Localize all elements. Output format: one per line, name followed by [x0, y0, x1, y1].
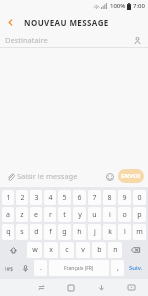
staticText: .	[40, 263, 42, 273]
button[interactable]: Accueil	[56, 279, 86, 296]
button[interactable]: Emoji	[103, 170, 116, 183]
button[interactable]: n	[108, 242, 122, 258]
staticText: o	[122, 210, 127, 220]
button[interactable]: 1	[2, 190, 14, 205]
staticText: 8	[107, 193, 112, 203]
button[interactable]: Applications récentes	[26, 279, 56, 296]
button[interactable]: l	[118, 224, 131, 240]
staticText: j	[94, 227, 96, 237]
button[interactable]: w	[27, 242, 42, 258]
button[interactable]: Majuscule	[2, 242, 25, 258]
button[interactable]: Français (FR)	[49, 260, 109, 276]
staticText: n	[113, 245, 118, 255]
button[interactable]: .	[34, 260, 47, 276]
button[interactable]: 9	[118, 190, 131, 205]
button[interactable]: Retour	[0, 12, 20, 32]
staticText: !#$	[5, 265, 14, 272]
button[interactable]: z	[16, 207, 28, 222]
button[interactable]: Micro	[19, 260, 32, 276]
staticText: m	[136, 227, 143, 237]
staticText: Français (FR)	[64, 265, 94, 272]
staticText: p	[137, 210, 142, 220]
staticText: k	[108, 227, 112, 237]
staticText: 0	[137, 193, 142, 203]
button[interactable]: ,	[111, 260, 124, 276]
staticText: y	[78, 210, 82, 220]
button[interactable]: r	[44, 207, 56, 222]
staticText: 7:00	[133, 2, 145, 10]
button[interactable]: a	[2, 207, 14, 222]
button[interactable]: Contacts	[131, 34, 143, 46]
staticText: 3	[34, 193, 39, 203]
button[interactable]: y	[73, 207, 86, 222]
button[interactable]: 0	[133, 190, 146, 205]
button[interactable]: 6	[73, 190, 86, 205]
staticText: d	[34, 227, 39, 237]
staticText: 1	[6, 193, 11, 203]
staticText: q	[6, 227, 11, 237]
button[interactable]: v	[76, 242, 90, 258]
button[interactable]: s	[16, 224, 28, 240]
staticText: 5	[62, 193, 67, 203]
button[interactable]: k	[103, 224, 116, 240]
button[interactable]: 3	[30, 190, 42, 205]
staticText: i	[109, 210, 111, 220]
staticText: u	[92, 210, 97, 220]
staticText: h	[77, 227, 82, 237]
staticText: r	[49, 210, 52, 220]
button[interactable]: Destinataire	[0, 32, 148, 47]
staticText: l	[124, 227, 126, 237]
button[interactable]: j	[88, 224, 101, 240]
staticText: 9	[122, 193, 127, 203]
staticText: f	[49, 227, 52, 237]
button[interactable]: o	[118, 207, 131, 222]
button[interactable]: e	[30, 207, 42, 222]
staticText: 6	[77, 193, 82, 203]
button[interactable]: u	[88, 207, 101, 222]
staticText: NOUVEAU MESSAGE	[24, 17, 109, 28]
button[interactable]: Supprimer	[124, 242, 146, 258]
staticText: v	[81, 245, 85, 255]
button[interactable]: g	[58, 224, 71, 240]
staticText: ENVOI	[121, 172, 141, 180]
staticText: Destinataire	[5, 35, 131, 45]
staticText: a	[6, 210, 10, 220]
staticText: b	[97, 245, 102, 255]
staticText: g	[62, 227, 67, 237]
button[interactable]: i	[103, 207, 116, 222]
button[interactable]: x	[44, 242, 58, 258]
button[interactable]: Joindre un fichier	[4, 170, 17, 183]
button[interactable]: h	[73, 224, 86, 240]
button[interactable]: Changer de clavier	[116, 279, 146, 296]
button[interactable]: 5	[58, 190, 71, 205]
button[interactable]: 4	[44, 190, 56, 205]
button[interactable]: 8	[103, 190, 116, 205]
button[interactable]: p	[133, 207, 146, 222]
button[interactable]: t	[58, 207, 71, 222]
staticText: x	[49, 245, 53, 255]
button[interactable]: Saisir le message	[17, 171, 103, 181]
staticText: t	[63, 210, 66, 220]
button[interactable]: 7	[88, 190, 101, 205]
staticText: e	[34, 210, 38, 220]
button[interactable]: d	[30, 224, 42, 240]
button[interactable]: 2	[16, 190, 28, 205]
button[interactable]: Masquer le clavier	[86, 279, 116, 296]
button[interactable]: f	[44, 224, 56, 240]
button[interactable]: b	[92, 242, 106, 258]
button[interactable]: Suiv.	[125, 259, 147, 277]
staticText: 100%	[110, 2, 126, 10]
button[interactable]: m	[133, 224, 146, 240]
button[interactable]: c	[60, 242, 74, 258]
button[interactable]: !#$	[2, 260, 17, 276]
staticText: w	[32, 245, 38, 255]
button[interactable]: ENVOI	[118, 169, 144, 183]
staticText: c	[65, 245, 69, 255]
staticText: z	[20, 210, 24, 220]
staticText: Suiv.	[129, 264, 143, 272]
staticText: s	[20, 227, 24, 237]
staticText: ,	[117, 263, 119, 273]
staticText: 2	[20, 193, 25, 203]
button[interactable]: q	[2, 224, 14, 240]
staticText: 7	[92, 193, 97, 203]
